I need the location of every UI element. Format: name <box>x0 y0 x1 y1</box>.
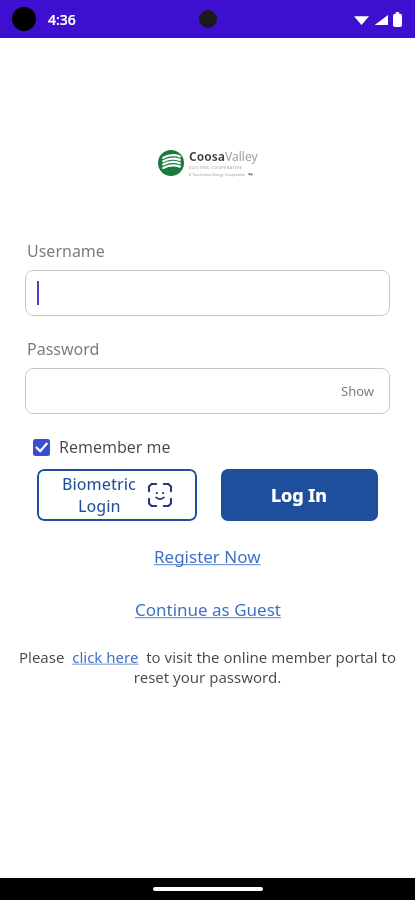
staticText: A Touchstone Energy Cooperative <box>189 172 246 177</box>
button[interactable]: Remember me <box>33 432 179 462</box>
staticText: Biometric <box>62 473 136 495</box>
staticText: Show <box>341 382 374 400</box>
staticText: Register Now <box>154 545 261 568</box>
button[interactable]: Register Now <box>146 541 269 572</box>
button[interactable]: Continue as Guest <box>127 594 289 625</box>
button[interactable]: Log In <box>221 469 378 521</box>
staticText: Log In <box>271 483 328 508</box>
button[interactable]: Please click here to visit the online me… <box>8 647 407 687</box>
staticText: Coosa <box>189 148 225 164</box>
staticText: Login <box>78 495 121 517</box>
staticText: Valley <box>225 148 258 164</box>
staticText: Username <box>27 240 105 262</box>
staticText: 4:36 <box>48 10 76 29</box>
button[interactable]: Show <box>337 378 378 404</box>
other: Face ID <box>148 483 172 507</box>
staticText: ELECTRIC COOPERATIVE <box>189 165 243 170</box>
staticText: Remember me <box>59 436 171 458</box>
button[interactable]: Biometric <box>37 469 197 521</box>
button[interactable]: Show <box>25 368 390 414</box>
button[interactable] <box>25 270 390 316</box>
staticText: Please click here to visit the online me… <box>8 647 407 687</box>
staticText: Password <box>27 338 100 360</box>
staticText: Continue as Guest <box>135 598 281 621</box>
